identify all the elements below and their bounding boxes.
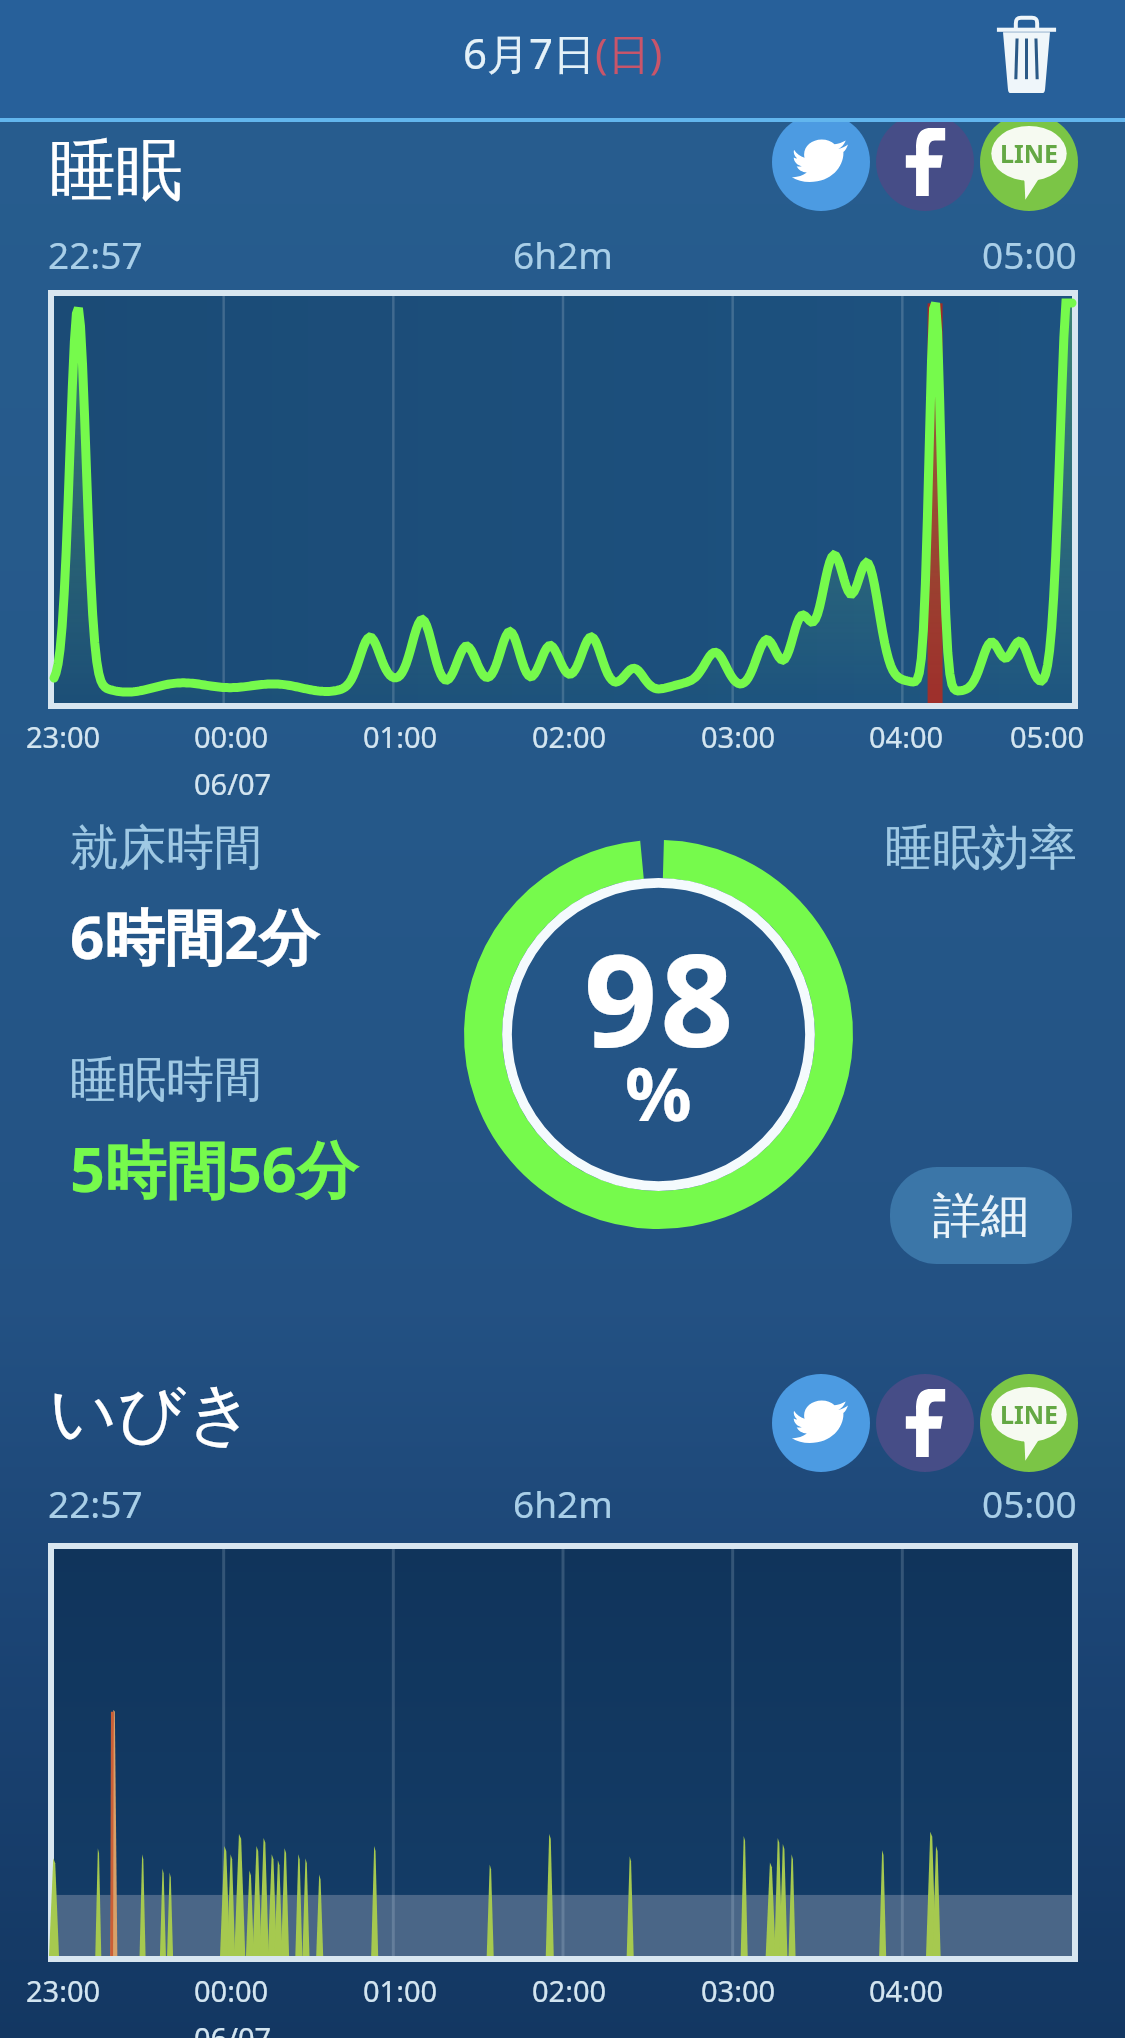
staticText: 00:00: [194, 717, 269, 756]
staticText: 01:00: [363, 1971, 438, 2010]
staticText: %: [625, 1042, 692, 1143]
staticText: LINE: [1000, 1397, 1059, 1431]
staticText: 06/07: [194, 764, 272, 803]
staticText: 5時間56分: [70, 1127, 358, 1210]
button[interactable]: Share on Twitter: [772, 1374, 870, 1472]
staticText: 03:00: [701, 717, 776, 756]
staticText: 就床時間: [70, 818, 262, 878]
staticText: 05:00: [982, 1478, 1077, 1528]
staticText: 03:00: [701, 1971, 776, 2010]
staticText: いびき: [49, 1371, 255, 1455]
staticText: 22:57: [48, 1478, 143, 1528]
button[interactable]: Share on Facebook: [876, 1374, 974, 1472]
button[interactable]: Delete: [988, 7, 1064, 103]
staticText: 詳細: [933, 1186, 1029, 1246]
button[interactable]: 詳細: [890, 1167, 1072, 1264]
staticText: 23:00: [26, 1971, 101, 2010]
staticText: 23:00: [26, 717, 101, 756]
staticText: 00:00: [194, 1971, 269, 2010]
staticText: 6h2m: [513, 229, 613, 279]
button[interactable]: Share on Twitter: [772, 113, 870, 211]
staticText: 02:00: [532, 1971, 607, 2010]
staticText: 6月7日(日): [463, 24, 663, 81]
staticText: 01:00: [363, 717, 438, 756]
staticText: 04:00: [869, 717, 944, 756]
button[interactable]: Share on LINE: [980, 1374, 1078, 1472]
staticText: 22:57: [48, 229, 143, 279]
button[interactable]: Share on LINE: [980, 113, 1078, 211]
staticText: 98: [584, 910, 737, 1084]
staticText: 睡眠: [49, 128, 183, 212]
staticText: 06/07: [194, 2018, 272, 2038]
button[interactable]: Share on Facebook: [876, 113, 974, 211]
staticText: 6h2m: [513, 1478, 613, 1528]
staticText: 04:00: [869, 1971, 944, 2010]
staticText: 05:00: [1010, 717, 1085, 756]
staticText: 睡眠効率: [885, 818, 1077, 878]
staticText: 6時間2分: [70, 895, 319, 977]
staticText: LINE: [1000, 136, 1059, 170]
staticText: 睡眠時間: [70, 1050, 262, 1110]
staticText: 05:00: [982, 229, 1077, 279]
staticText: 02:00: [532, 717, 607, 756]
